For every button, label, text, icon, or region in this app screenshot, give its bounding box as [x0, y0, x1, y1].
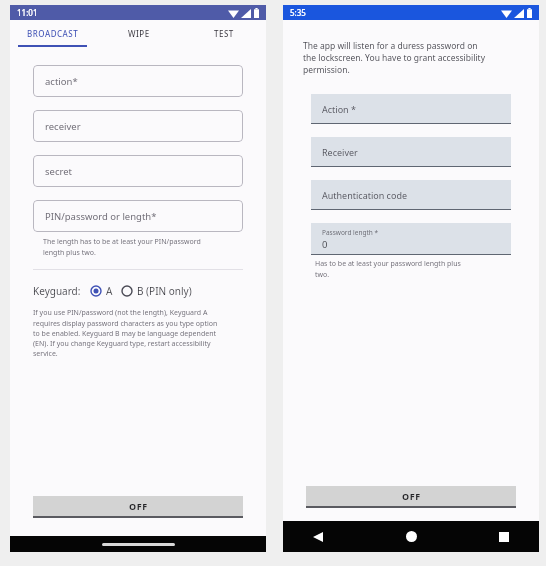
button[interactable]: receiver	[33, 110, 243, 142]
button[interactable]: BROADCAST	[10, 20, 96, 47]
staticText: BROADCAST	[27, 28, 79, 39]
button[interactable]: A	[90, 284, 113, 298]
staticText: 11:01	[17, 7, 38, 18]
button[interactable]: OFF	[306, 486, 516, 508]
staticText: WIPE	[128, 28, 150, 39]
button[interactable]: Recent apps	[487, 521, 521, 552]
button[interactable]: Password length *	[311, 223, 511, 255]
button[interactable]: PIN/password or length*	[33, 200, 243, 232]
button[interactable]: Back	[301, 521, 335, 552]
staticText: A	[106, 284, 113, 298]
button[interactable]: B (PIN only)	[121, 284, 192, 298]
button[interactable]: Action *	[311, 94, 511, 124]
button[interactable]: WIPE	[96, 20, 181, 47]
staticText: 0	[322, 238, 328, 251]
staticText: The app will listen for a duress passwor…	[303, 40, 485, 76]
staticText: OFF	[402, 490, 421, 502]
button[interactable]: TEST	[181, 20, 266, 47]
staticText: Has to be at least your password length …	[315, 259, 461, 279]
staticText: The length has to be at least your PIN/p…	[43, 237, 201, 257]
button[interactable]: Home	[394, 521, 428, 552]
staticText: Action *	[322, 103, 356, 115]
staticText: action*	[45, 75, 78, 88]
button[interactable]: Receiver	[311, 137, 511, 167]
staticText: TEST	[214, 28, 234, 39]
staticText: Authentication code	[322, 189, 407, 201]
staticText: OFF	[129, 500, 148, 512]
button[interactable]: OFF	[33, 496, 243, 518]
staticText: Password length *	[322, 228, 379, 237]
staticText: If you use PIN/password (not the length)…	[33, 308, 218, 358]
staticText: Receiver	[322, 146, 358, 158]
button[interactable]: Authentication code	[311, 180, 511, 210]
staticText: 5:35	[290, 7, 306, 18]
button[interactable]: action*	[33, 65, 243, 97]
staticText: B (PIN only)	[137, 284, 192, 298]
staticText: secret	[45, 165, 72, 178]
staticText: Keyguard:	[33, 284, 81, 298]
staticText: receiver	[45, 120, 81, 133]
staticText: PIN/password or length*	[45, 210, 157, 223]
button[interactable]: secret	[33, 155, 243, 187]
